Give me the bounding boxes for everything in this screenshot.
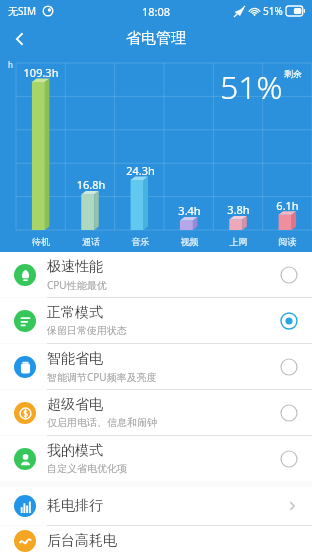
- button[interactable]: 后台高耗电: [0, 526, 312, 555]
- staticText: 耗电排行: [47, 497, 286, 515]
- staticText: 16.8h: [66, 177, 116, 192]
- staticText: 视频: [165, 236, 214, 247]
- button[interactable]: Back: [0, 22, 40, 55]
- staticText: 3.8h: [214, 202, 263, 217]
- staticText: 智能调节CPU频率及亮度: [47, 370, 157, 384]
- staticText: 51%: [220, 65, 283, 109]
- button[interactable]: 正常模式: [0, 298, 312, 343]
- staticText: 51%: [263, 4, 283, 18]
- staticText: 超级省电: [47, 396, 103, 414]
- button[interactable]: 极速性能: [0, 252, 312, 297]
- staticText: 阅读: [263, 236, 312, 247]
- staticText: 109.3h: [16, 65, 66, 80]
- staticText: 6.1h: [263, 198, 312, 213]
- staticText: 无SIM: [8, 4, 36, 18]
- staticText: 18:08: [142, 4, 171, 19]
- staticText: 仅启用电话、信息和闹钟: [47, 416, 157, 429]
- staticText: CPU性能最优: [47, 278, 107, 292]
- button[interactable]: 我的模式: [0, 436, 312, 481]
- button[interactable]: 超级省电: [0, 390, 312, 435]
- staticText: 剩余: [284, 68, 302, 79]
- button[interactable]: 智能省电: [0, 344, 312, 389]
- staticText: 24.3h: [116, 163, 165, 178]
- staticText: 省电管理: [126, 29, 186, 48]
- staticText: 通话: [66, 236, 116, 247]
- staticText: 待机: [16, 236, 66, 247]
- staticText: 正常模式: [47, 304, 103, 322]
- staticText: 后台高耗电: [47, 532, 298, 550]
- button[interactable]: 耗电排行: [0, 487, 312, 525]
- staticText: 我的模式: [47, 442, 103, 460]
- staticText: 上网: [214, 236, 263, 247]
- staticText: 保留日常使用状态: [47, 324, 127, 337]
- staticText: 极速性能: [47, 258, 103, 276]
- staticText: 3.4h: [165, 203, 214, 218]
- staticText: 音乐: [116, 236, 165, 247]
- staticText: h: [8, 59, 13, 70]
- staticText: 自定义省电优化项: [47, 462, 127, 475]
- staticText: 智能省电: [47, 350, 103, 368]
